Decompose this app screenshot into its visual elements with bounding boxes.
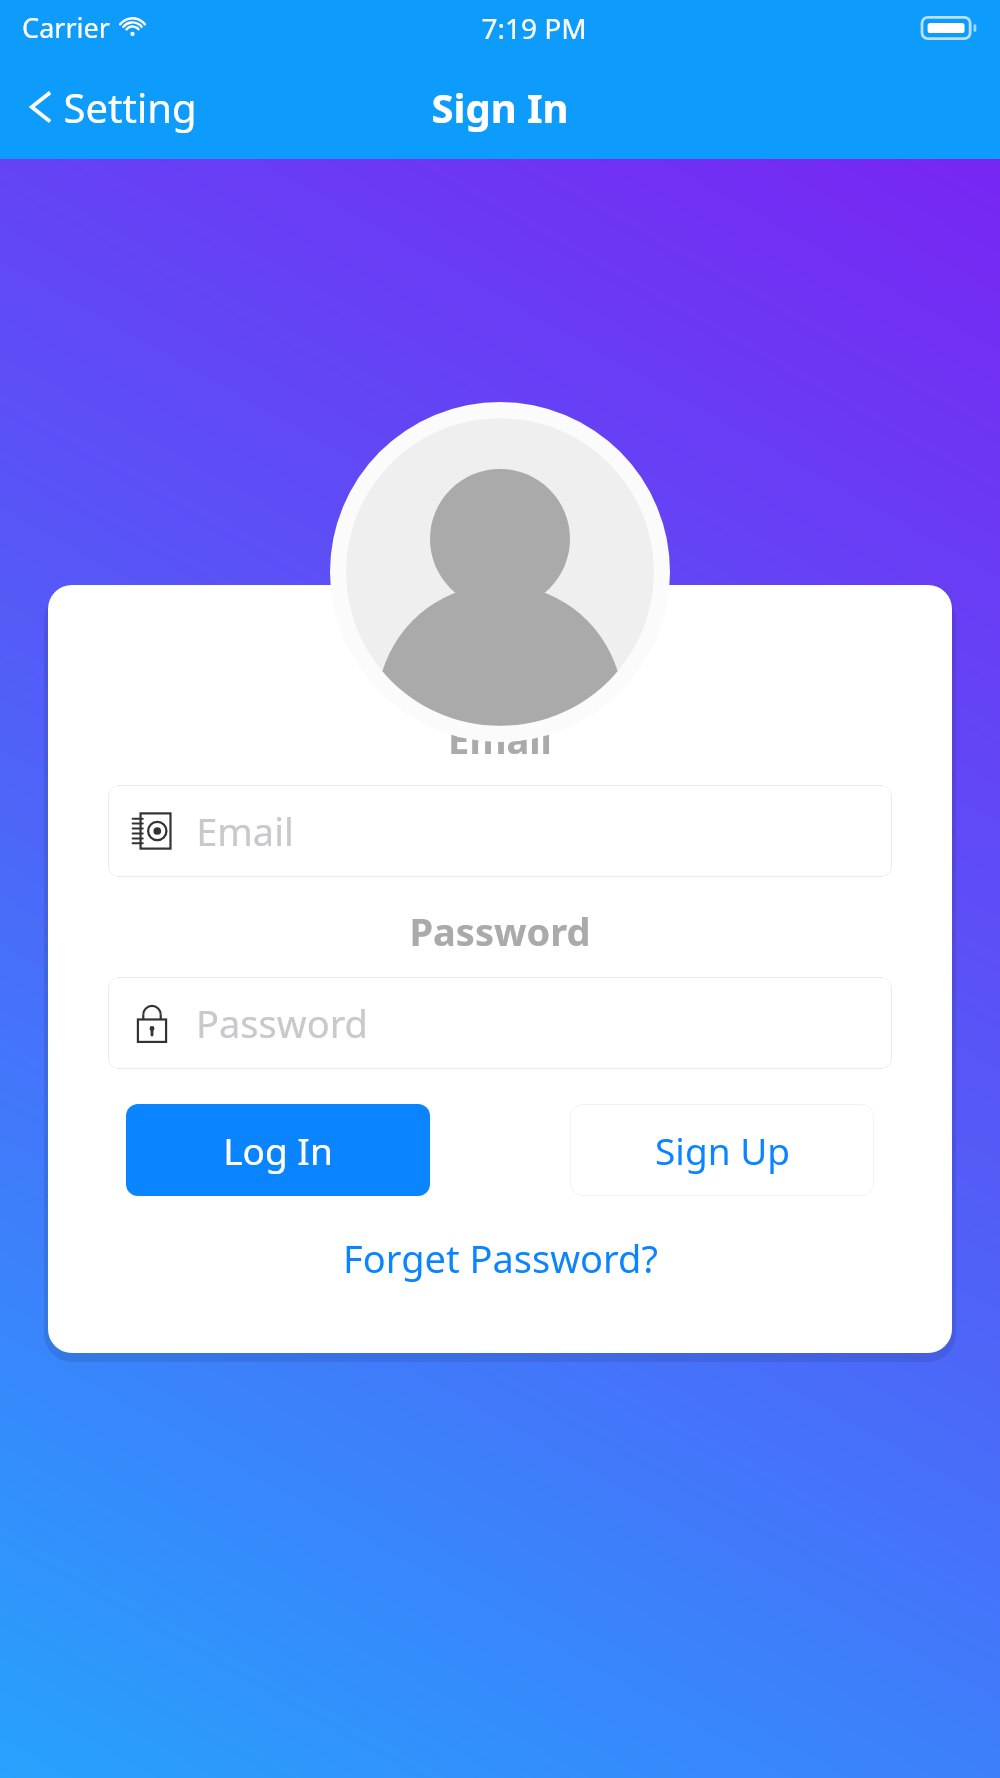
staticText: 7:19 PM (481, 9, 587, 47)
staticText: Email (196, 805, 294, 857)
button[interactable]: Setting (0, 68, 215, 146)
other: Email (130, 809, 174, 853)
other: Password (130, 1001, 174, 1045)
button[interactable]: Sign Up (570, 1104, 874, 1196)
staticText: Carrier (22, 9, 110, 46)
staticText: Email (448, 713, 552, 765)
staticText: Log In (223, 1125, 333, 1175)
staticText: Forget Password? (343, 1232, 658, 1284)
button[interactable]: Forget Password? (325, 1226, 676, 1290)
button[interactable]: Password (108, 977, 892, 1069)
button[interactable]: Email (108, 785, 892, 877)
staticText: Password (196, 997, 368, 1049)
staticText: Password (409, 905, 591, 957)
staticText: Setting (63, 80, 197, 134)
staticText: Sign Up (655, 1125, 790, 1175)
staticText: Sign In (431, 80, 569, 134)
button[interactable]: Log In (126, 1104, 430, 1196)
